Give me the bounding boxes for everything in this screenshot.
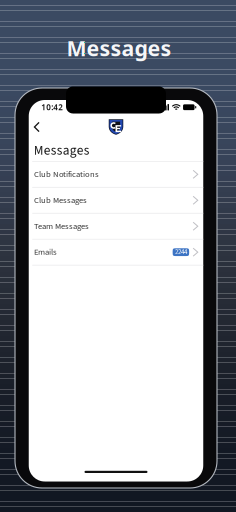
button[interactable]: Club Notifications [29,162,203,187]
staticText: Club Notifications [34,168,99,180]
button[interactable]: Emails [29,240,203,265]
staticText: Emails [34,246,57,258]
staticText: Team Messages [34,220,89,232]
staticText: Messages [66,34,171,62]
button[interactable]: Back [29,116,45,138]
button[interactable]: Team Messages [29,214,203,239]
button[interactable]: Club Messages [29,188,203,213]
staticText: 10:42 [41,102,63,112]
staticText: 2244 [175,247,187,257]
staticText: Club Messages [34,194,87,206]
staticText: Messages [34,141,90,160]
